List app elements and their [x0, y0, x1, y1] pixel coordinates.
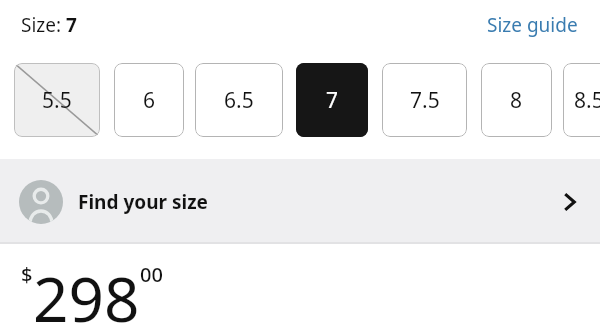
staticText: 7.5 [410, 86, 440, 115]
button[interactable]: 8 [481, 63, 552, 137]
staticText: 7 [326, 86, 339, 115]
staticText: 6 [143, 86, 156, 115]
staticText: 5.5 [42, 86, 72, 115]
button[interactable]: 7 [296, 63, 368, 137]
button[interactable]: 6.5 [195, 63, 283, 137]
button[interactable]: 7.5 [382, 63, 467, 137]
other: Find your size [552, 184, 588, 220]
staticText: Find your size [78, 189, 208, 215]
staticText: 6.5 [224, 86, 254, 115]
staticText: 8.5 [574, 86, 600, 115]
staticText: 298 [33, 256, 140, 333]
staticText: Size: 7 [21, 12, 77, 38]
button[interactable]: Find your size [0, 159, 600, 244]
staticText: 8 [510, 86, 523, 115]
button[interactable]: 8.5 [563, 63, 600, 137]
staticText: Size guide [487, 12, 578, 38]
staticText: 00 [140, 261, 163, 288]
button[interactable]: 6 [114, 63, 184, 137]
staticText: $ [21, 261, 33, 288]
button[interactable]: 5.5 [14, 63, 100, 137]
button[interactable]: Size guide [483, 8, 582, 42]
